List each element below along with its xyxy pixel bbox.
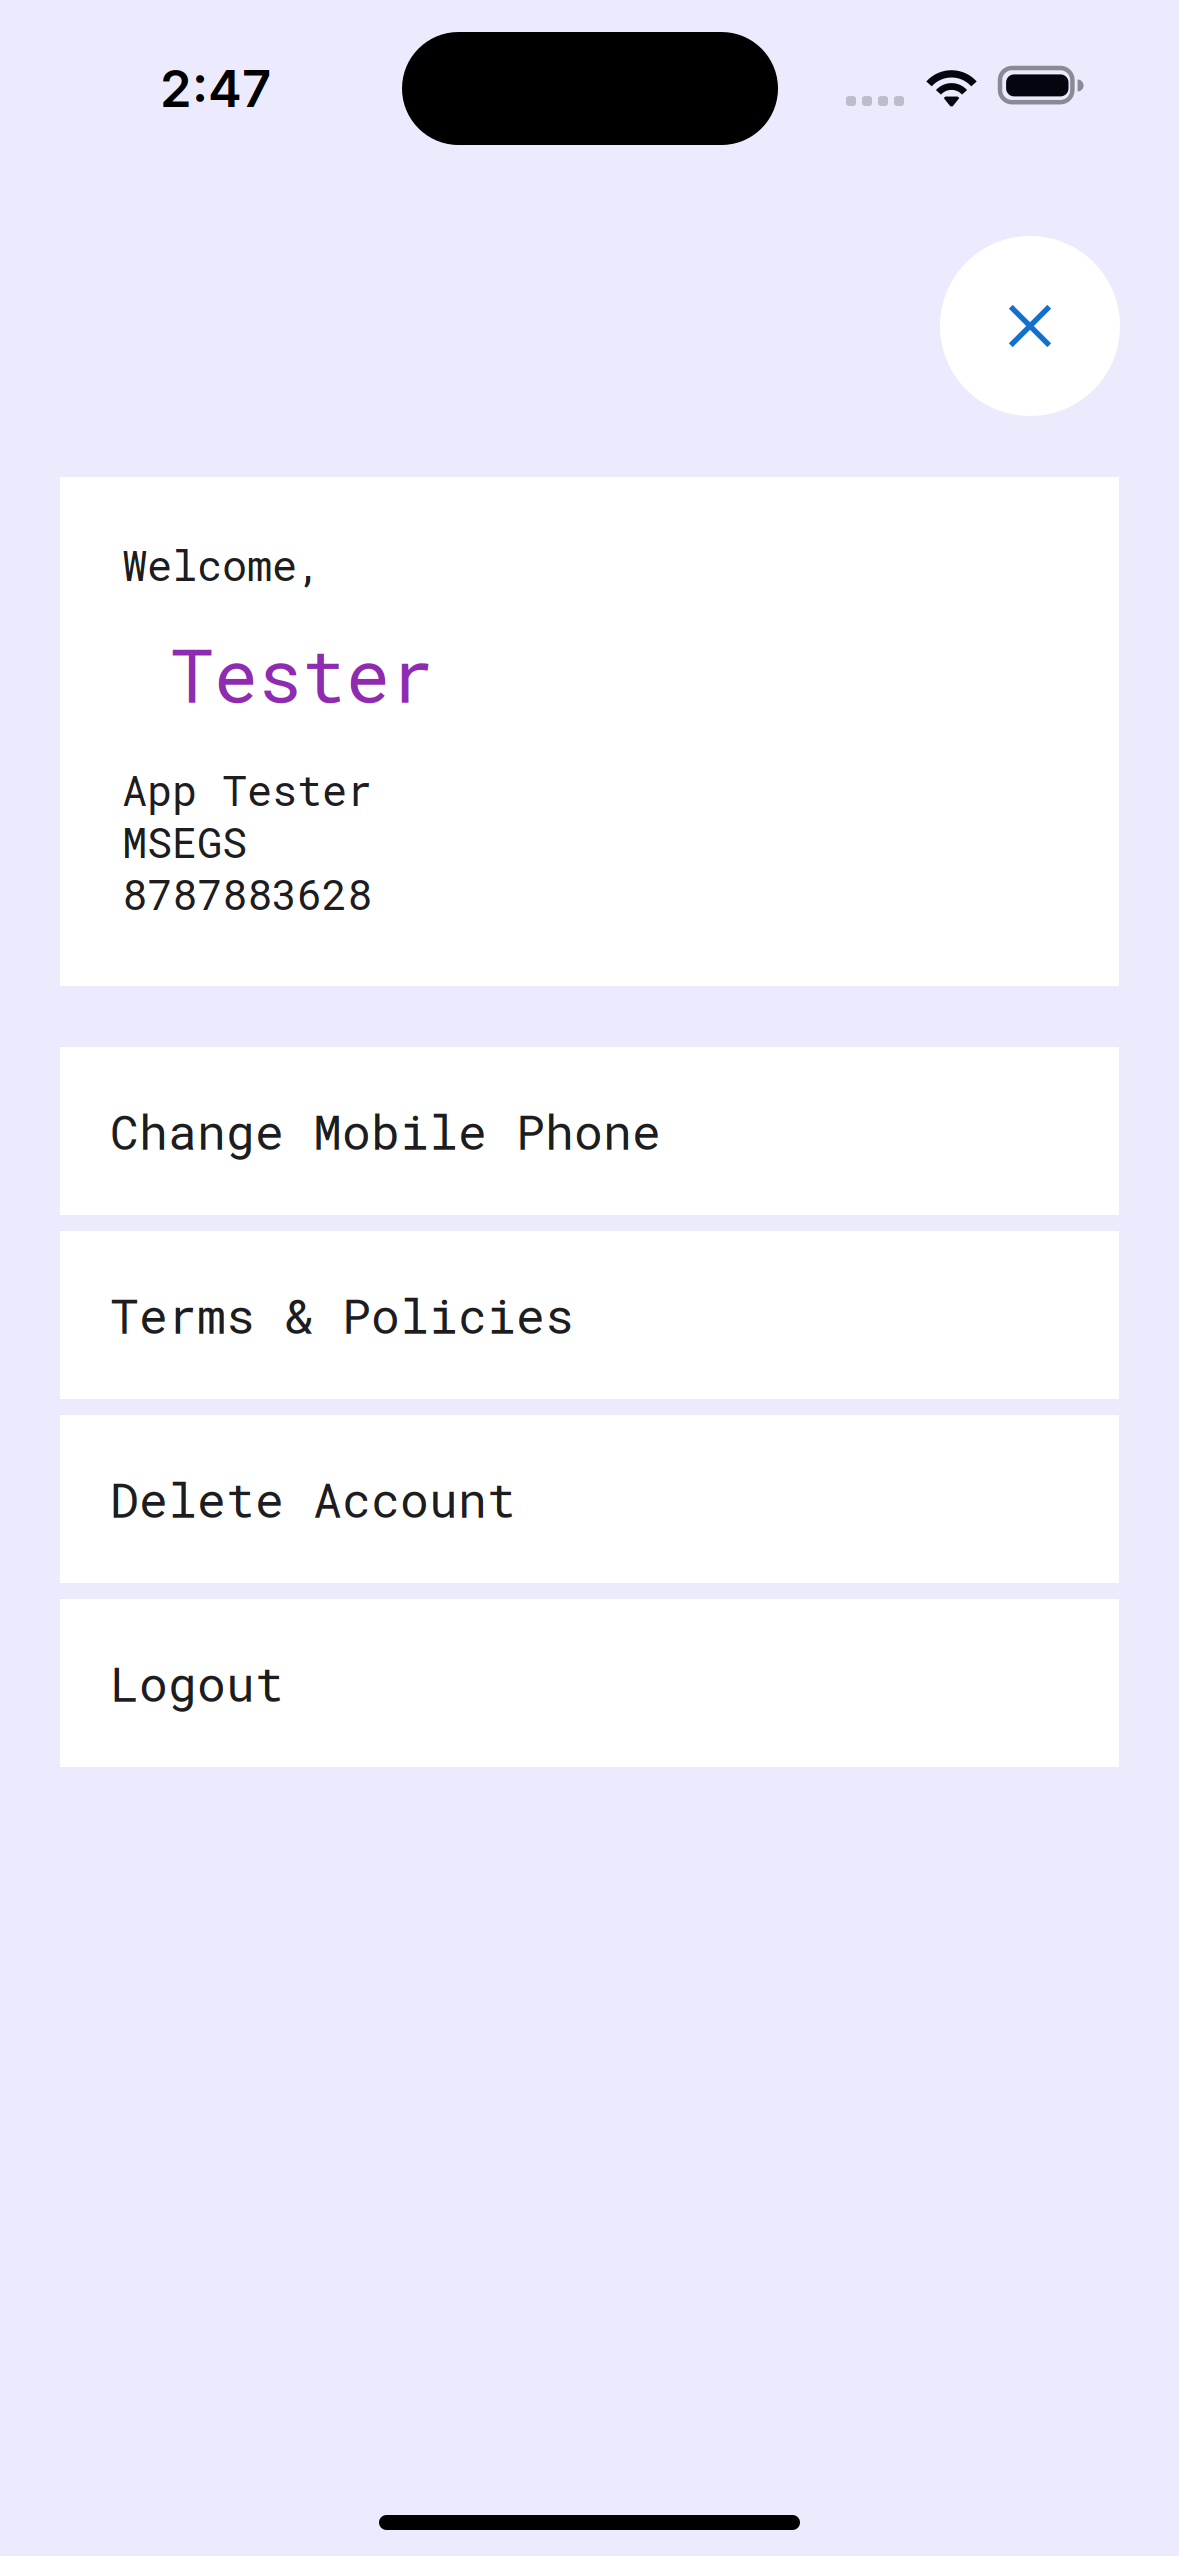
button[interactable]: Delete Account xyxy=(60,1415,1119,1583)
staticText: Tester xyxy=(170,626,434,723)
staticText: App Tester xyxy=(122,762,372,817)
button[interactable]: Logout xyxy=(60,1599,1119,1767)
staticText: Delete Account xyxy=(110,1467,516,1531)
staticText: Change Mobile Phone xyxy=(110,1099,661,1163)
staticText: MSEGS xyxy=(122,814,247,869)
button[interactable]: Change Mobile Phone xyxy=(60,1047,1119,1215)
button[interactable]: Terms & Policies xyxy=(60,1231,1119,1399)
staticText: 8787883628 xyxy=(122,866,372,921)
staticText: Terms & Policies xyxy=(110,1283,574,1347)
staticText: Logout xyxy=(110,1651,284,1715)
staticText: Welcome, xyxy=(122,537,322,592)
staticText: 2:47 xyxy=(160,58,271,119)
button[interactable]: Close xyxy=(940,236,1120,416)
